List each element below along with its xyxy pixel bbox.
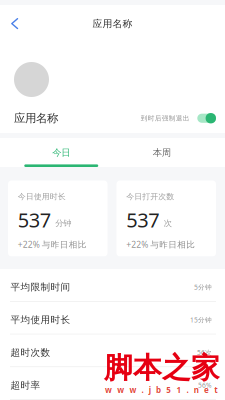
staticText: 应用名称: [14, 111, 58, 125]
staticText: 5分钟: [194, 283, 212, 292]
button[interactable]: Back: [5, 13, 25, 34]
staticText: 5: [166, 384, 171, 395]
button[interactable]: 平均使用时长: [0, 302, 225, 334]
button[interactable]: 到时后强制退出: [141, 113, 216, 123]
button[interactable]: 超时次数: [0, 334, 225, 367]
staticText: w: [105, 384, 112, 395]
staticText: +22% 与昨日相比: [126, 239, 195, 250]
staticText: 超时率: [10, 379, 40, 391]
staticText: 脚本之家: [104, 350, 220, 386]
staticText: 15分钟: [190, 315, 212, 324]
staticText: 平均使用时长: [10, 314, 70, 326]
staticText: 537: [18, 206, 51, 233]
button[interactable]: 今日: [11, 138, 111, 167]
staticText: j: [149, 384, 151, 395]
staticText: 537: [126, 206, 159, 233]
staticText: 1: [176, 384, 181, 395]
staticText: w: [117, 384, 124, 395]
staticText: 今日打开次数: [126, 191, 174, 201]
staticText: 今日使用时长: [18, 191, 66, 201]
staticText: .: [187, 384, 189, 395]
staticText: 到时后强制退出: [141, 114, 190, 122]
button[interactable]: 超时率: [0, 367, 225, 400]
staticText: n: [194, 384, 199, 395]
staticText: 56%: [198, 381, 212, 390]
staticText: w: [129, 384, 136, 395]
staticText: b: [156, 384, 161, 395]
staticText: t: [214, 384, 217, 395]
staticText: 分钟: [55, 218, 71, 228]
staticText: 次: [164, 218, 172, 228]
staticText: 平均限制时间: [10, 281, 70, 293]
staticText: 56次: [197, 348, 212, 357]
button[interactable]: 本周: [111, 138, 212, 167]
staticText: 应用名称: [92, 18, 132, 30]
staticText: 超时次数: [10, 346, 50, 359]
staticText: +22% 与昨日相比: [18, 239, 87, 250]
button[interactable]: 平均限制时间: [0, 269, 225, 302]
staticText: 今日: [52, 147, 70, 158]
staticText: e: [204, 384, 209, 395]
staticText: .: [142, 384, 144, 395]
staticText: 本周: [153, 147, 171, 158]
